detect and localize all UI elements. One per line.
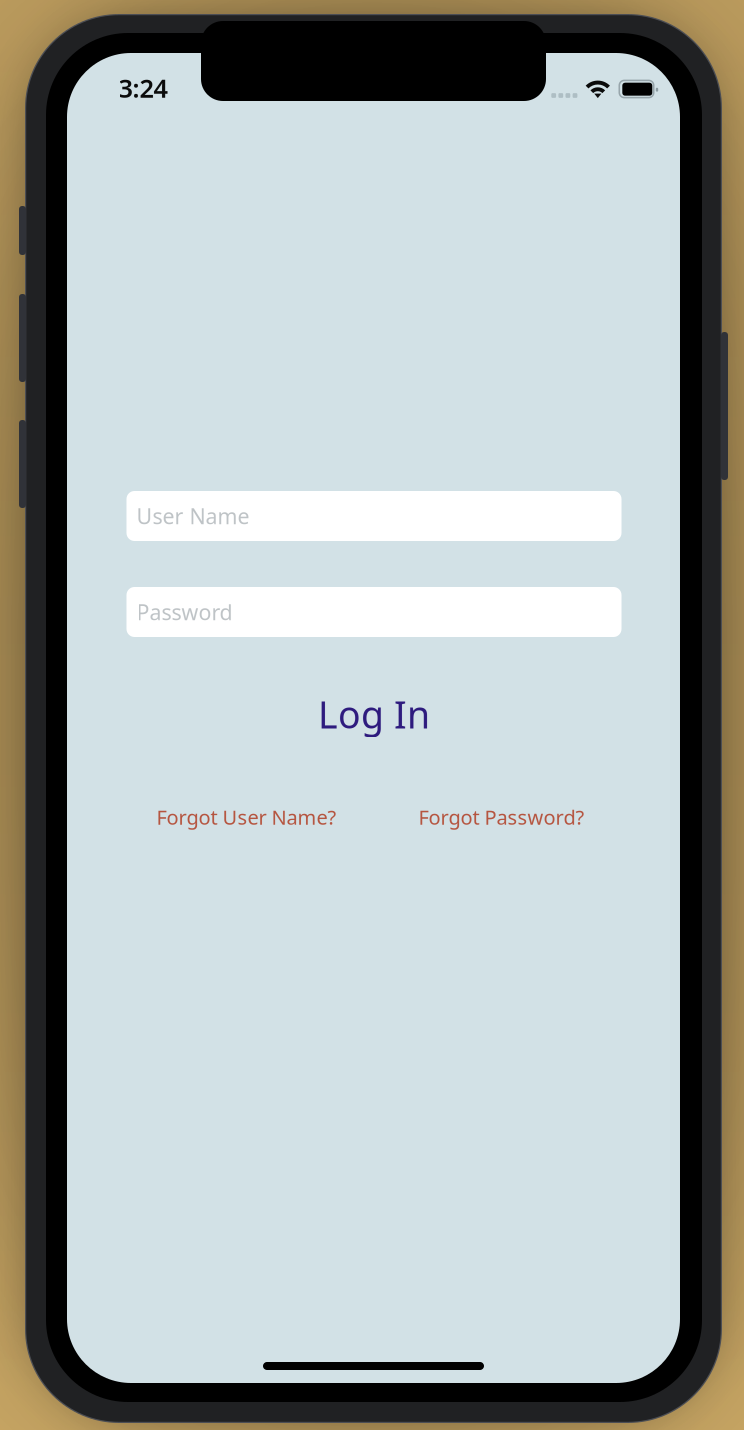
button[interactable]: Forgot Password? [401, 800, 601, 834]
staticText: User Name [136, 502, 249, 530]
button[interactable]: Log In [126, 690, 621, 738]
button[interactable]: Forgot User Name? [146, 800, 346, 834]
staticText: Password [136, 598, 232, 626]
staticText: Forgot Password? [418, 804, 584, 830]
button[interactable]: Password [126, 587, 621, 637]
staticText: Log In [318, 689, 430, 739]
staticText: 3:24 [118, 71, 167, 105]
staticText: Forgot User Name? [156, 804, 336, 830]
button[interactable]: User Name [126, 491, 621, 541]
